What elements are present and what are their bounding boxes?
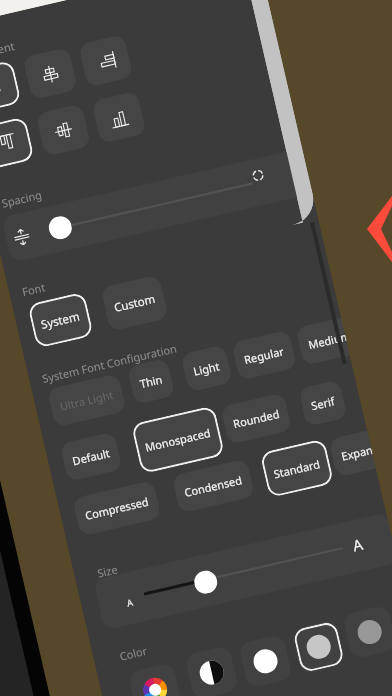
- button[interactable]: Default: [59, 431, 123, 482]
- button[interactable]: Compressed: [72, 480, 162, 537]
- staticText: Rounded: [232, 406, 281, 431]
- button[interactable]: Colour swatch: [185, 646, 238, 696]
- staticText: Condensed: [183, 472, 244, 500]
- button[interactable]: Thin: [127, 358, 175, 405]
- button[interactable]: Alignment option: [35, 103, 91, 157]
- button[interactable]: Monospaced: [131, 405, 225, 474]
- button[interactable]: Alignment option: [0, 116, 35, 170]
- button[interactable]: Alignment option: [22, 47, 78, 100]
- staticText: System Font Configuration: [41, 340, 178, 386]
- button[interactable]: Spacing slider: [46, 214, 74, 242]
- staticText: Size: [96, 561, 120, 580]
- staticText: A: [350, 534, 365, 555]
- button[interactable]: Expanded: [328, 424, 392, 477]
- button[interactable]: Line spacing: [10, 225, 34, 249]
- staticText: Expanded: [340, 437, 392, 464]
- staticText: Color: [118, 643, 149, 664]
- button[interactable]: Rounded: [220, 392, 292, 445]
- staticText: Monospaced: [144, 425, 212, 455]
- button[interactable]: Colour swatch: [239, 635, 292, 688]
- staticText: Font: [21, 279, 47, 299]
- button[interactable]: Colour swatch: [343, 606, 392, 658]
- button[interactable]: Alignment option: [91, 90, 147, 144]
- button[interactable]: Size slider: [192, 568, 219, 596]
- staticText: Medium: [307, 328, 352, 352]
- staticText: A: [125, 596, 134, 609]
- staticText: Custom: [112, 291, 157, 316]
- staticText: Alignment: [0, 38, 16, 65]
- staticText: Ultra Light: [58, 387, 115, 414]
- button[interactable]: Alignment option: [78, 34, 134, 87]
- button[interactable]: Custom: [100, 274, 169, 332]
- button[interactable]: Colour swatch: [129, 663, 182, 696]
- button[interactable]: Ultra Light: [47, 373, 127, 427]
- button[interactable]: Condensed: [171, 458, 255, 514]
- staticText: Light: [192, 358, 221, 379]
- staticText: Spacing: [0, 187, 43, 211]
- button[interactable]: Regular: [231, 329, 297, 381]
- button[interactable]: Colour swatch: [292, 620, 345, 673]
- staticText: Serif: [310, 393, 336, 413]
- button[interactable]: Light: [180, 344, 233, 392]
- button[interactable]: Alignment option: [0, 60, 22, 113]
- staticText: Default: [71, 445, 111, 468]
- staticText: Thin: [138, 371, 164, 391]
- button[interactable]: Medium: [295, 314, 363, 366]
- staticText: System: [39, 308, 82, 333]
- button[interactable]: Serif: [298, 379, 348, 427]
- staticText: Compressed: [83, 494, 150, 523]
- staticText: Regular: [242, 343, 286, 367]
- button[interactable]: System: [27, 292, 94, 348]
- button[interactable]: Standard: [260, 438, 334, 498]
- button[interactable]: Reset spacing: [246, 163, 270, 187]
- staticText: Standard: [272, 456, 322, 481]
